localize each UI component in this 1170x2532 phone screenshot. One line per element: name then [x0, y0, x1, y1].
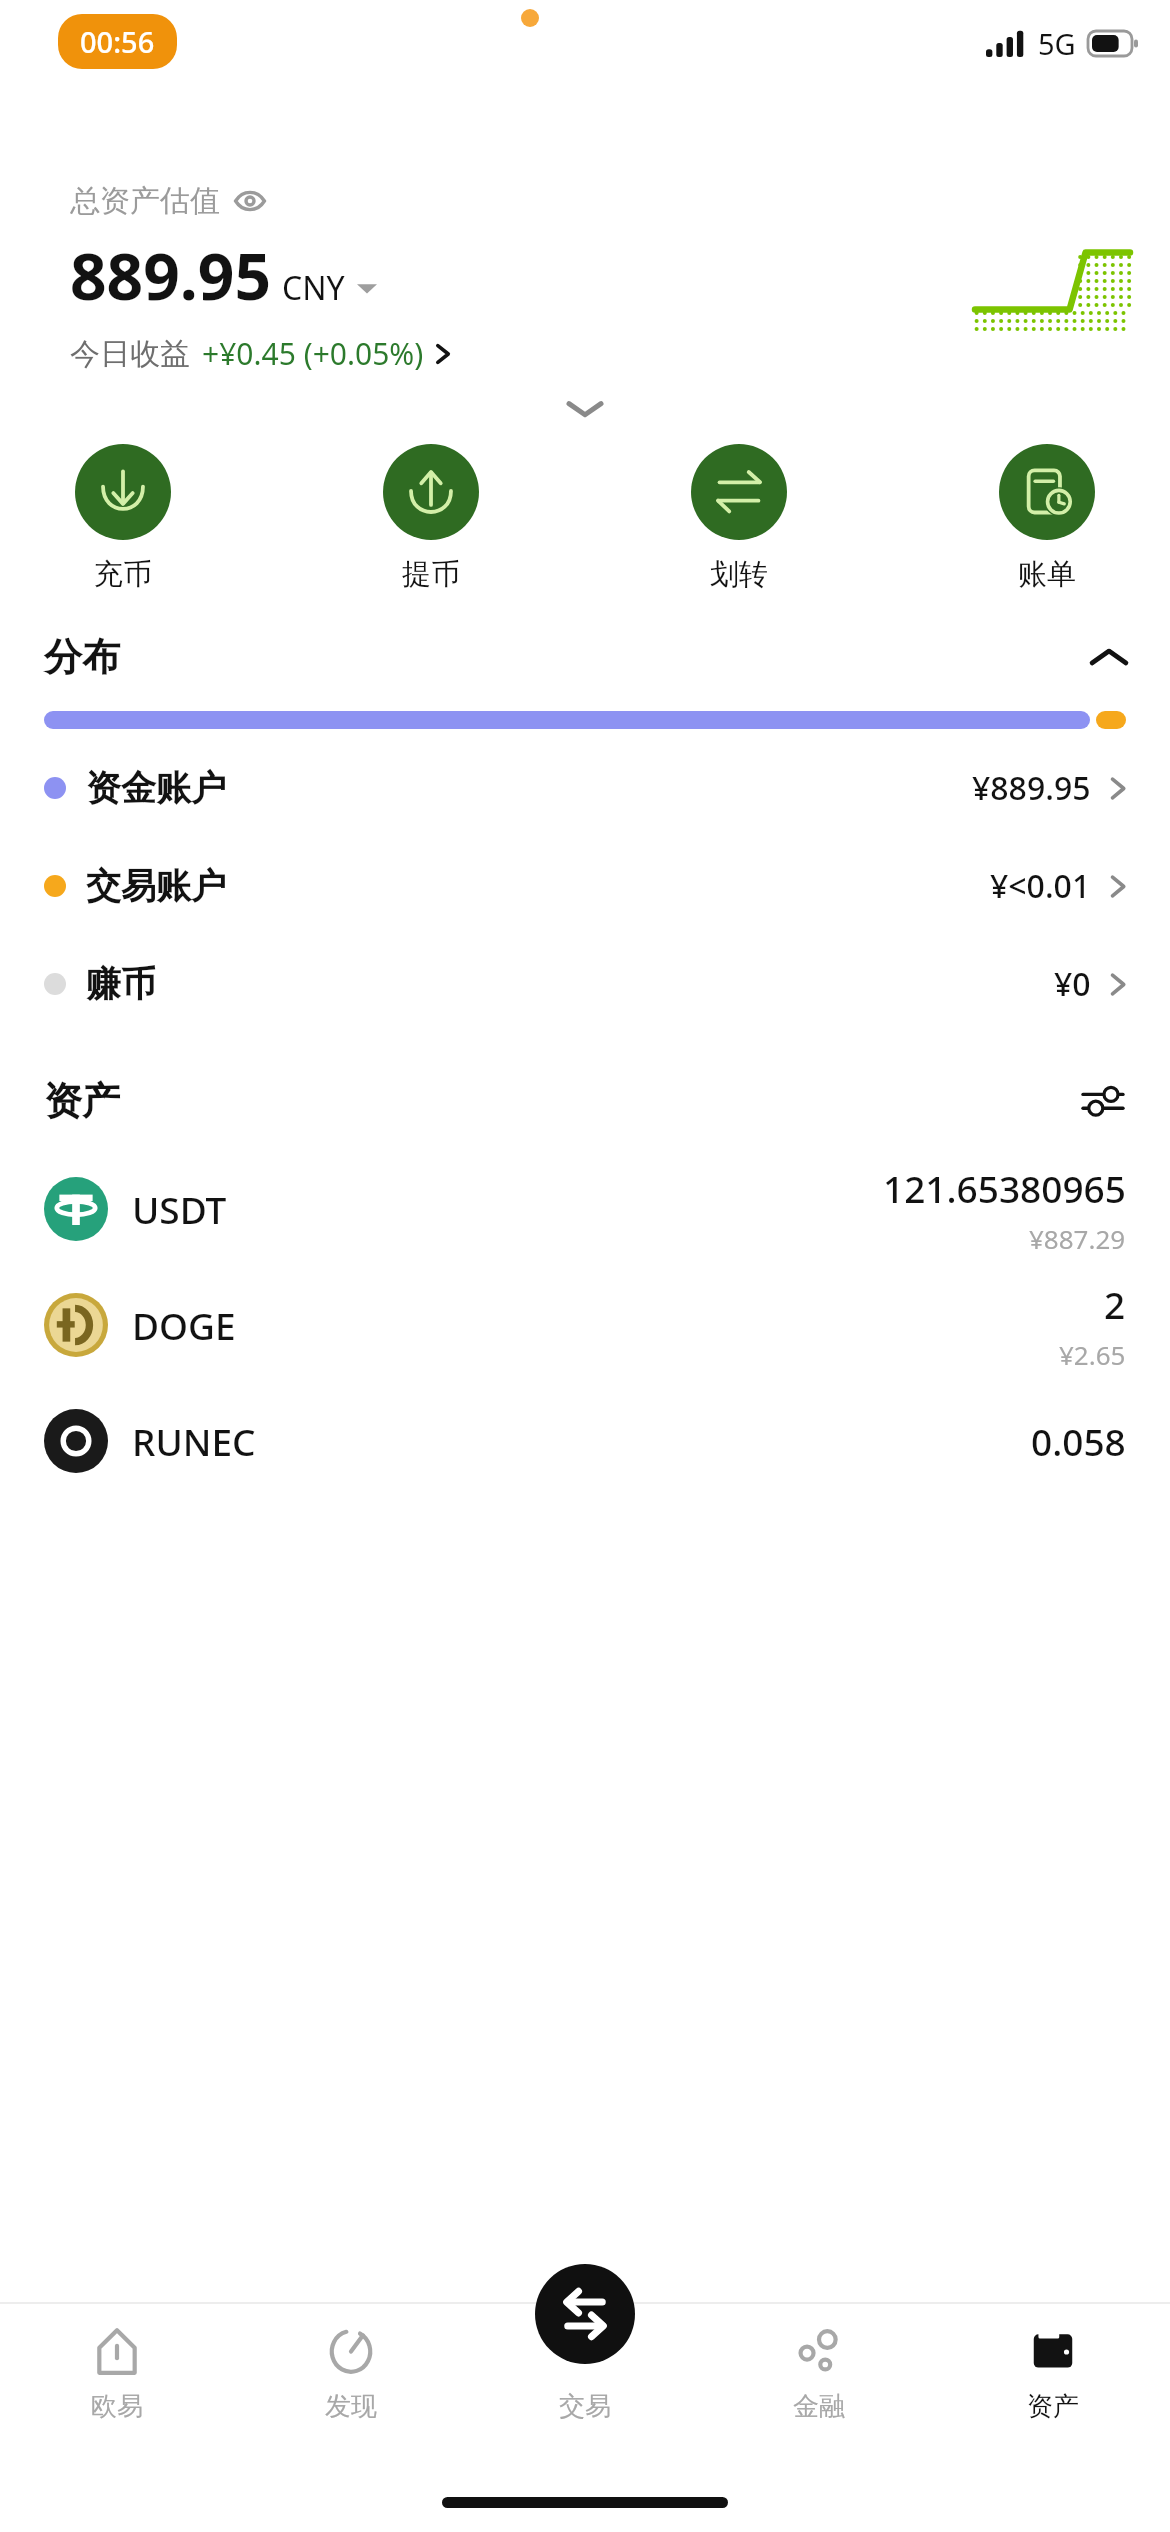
staticText: DOGE — [132, 1300, 236, 1350]
staticText: 总资产估值 — [70, 182, 220, 220]
staticText: 资产 — [44, 1077, 120, 1125]
button[interactable]: 资产 — [936, 2302, 1170, 2462]
staticText: 交易 — [559, 2390, 611, 2423]
staticText: 赚币 — [86, 962, 156, 1006]
button[interactable]: Expand details — [0, 374, 1170, 444]
staticText: +¥0.45 (+0.05%) — [202, 333, 424, 374]
button[interactable]: 提币 — [356, 444, 506, 593]
button[interactable]: USDT — [0, 1151, 1170, 1267]
staticText: 提币 — [402, 556, 460, 593]
button[interactable]: 账单 — [972, 444, 1122, 593]
staticText: 0.058 — [1031, 1416, 1126, 1466]
button[interactable]: 总资产估值 — [70, 182, 266, 220]
staticText: RUNEC — [132, 1416, 256, 1466]
button[interactable]: 赚币 — [0, 935, 1170, 1033]
button[interactable]: 分布 — [0, 633, 1170, 681]
staticText: ¥2.65 — [1059, 1337, 1126, 1372]
staticText: 今日收益 — [70, 335, 190, 373]
button[interactable]: 欧易 — [0, 2302, 234, 2462]
staticText: 00:56 — [80, 22, 155, 61]
button[interactable]: RUNEC — [0, 1383, 1170, 1499]
staticText: 充币 — [94, 556, 152, 593]
button[interactable]: DOGE — [0, 1267, 1170, 1383]
staticText: 划转 — [710, 556, 768, 593]
button[interactable]: 交易 — [468, 2302, 702, 2462]
staticText: ¥889.95 — [972, 766, 1091, 810]
other: Toggle balance visibility — [234, 185, 266, 217]
button[interactable]: Filter assets — [1080, 1078, 1126, 1124]
staticText: 账单 — [1018, 556, 1076, 593]
staticText: ¥887.29 — [1029, 1221, 1126, 1256]
staticText: 欧易 — [91, 2390, 143, 2423]
staticText: 121.65380965 — [883, 1163, 1126, 1213]
staticText: 889.95 — [70, 232, 272, 319]
staticText: 金融 — [793, 2390, 845, 2423]
button[interactable]: 划转 — [664, 444, 814, 593]
staticText: 分布 — [44, 633, 120, 681]
staticText: ¥0 — [1054, 962, 1091, 1006]
button[interactable]: 发现 — [234, 2302, 468, 2462]
button[interactable]: 交易 Trade — [535, 2264, 635, 2364]
staticText: 交易账户 — [86, 864, 226, 908]
staticText: 5G — [1038, 24, 1076, 63]
staticText: 2 — [1104, 1279, 1126, 1329]
staticText: ¥<0.01 — [990, 864, 1091, 908]
staticText: USDT — [132, 1184, 227, 1234]
button[interactable]: CNY — [282, 266, 377, 310]
staticText: 发现 — [325, 2390, 377, 2423]
button[interactable]: 今日收益 — [70, 333, 451, 374]
button[interactable]: 金融 — [702, 2302, 936, 2462]
staticText: 资金账户 — [86, 766, 226, 810]
button[interactable]: 资金账户 — [0, 739, 1170, 837]
staticText: 资产 — [1027, 2390, 1079, 2423]
staticText: CNY — [282, 266, 345, 310]
button[interactable]: 交易账户 — [0, 837, 1170, 935]
button[interactable]: 充币 — [48, 444, 198, 593]
